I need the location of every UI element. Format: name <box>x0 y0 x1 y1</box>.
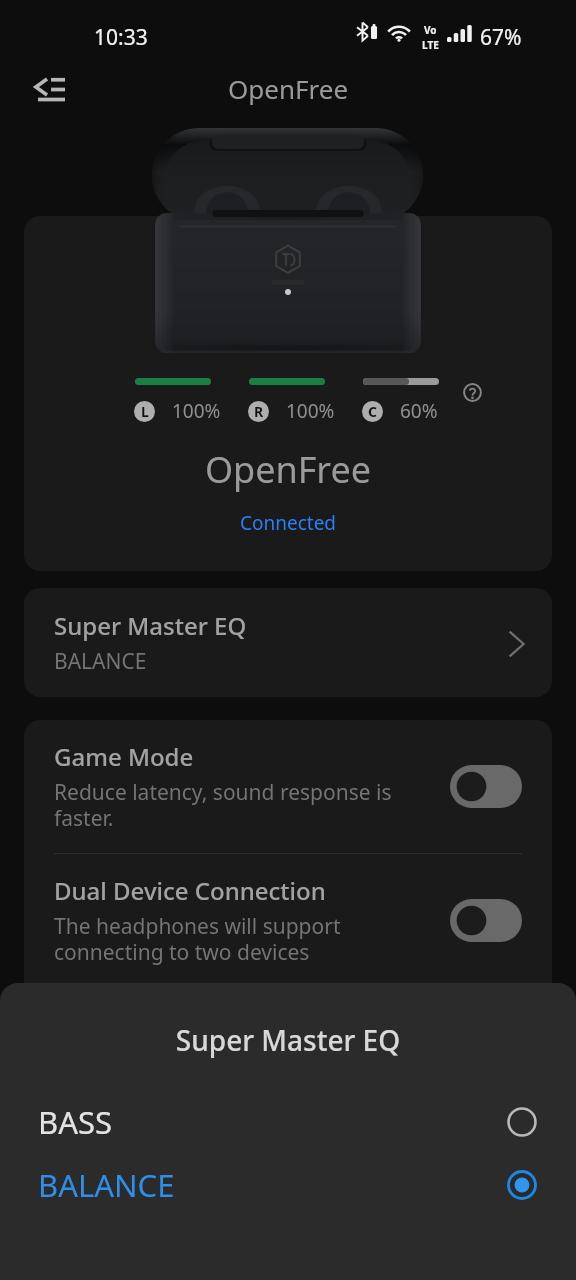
staticText: BALANCE <box>38 1164 506 1206</box>
staticText: 100% <box>172 398 221 424</box>
staticText: Dual Device Connection <box>54 874 326 907</box>
button[interactable]: Toggle <box>450 765 522 808</box>
button[interactable]: Game Mode <box>24 720 552 853</box>
staticText: BALANCE <box>54 647 147 676</box>
button[interactable]: BASS <box>0 1097 576 1147</box>
staticText: OpenFree <box>228 71 349 106</box>
button[interactable]: Dual Device Connection <box>24 854 552 987</box>
staticText: Super Master EQ <box>0 1021 576 1059</box>
button[interactable]: Toggle <box>450 899 522 942</box>
staticText: Connected <box>0 510 576 536</box>
staticText: 60% <box>400 398 438 424</box>
staticText: L <box>141 402 149 421</box>
staticText: The headphones will support connecting t… <box>54 912 341 967</box>
staticText: LTE <box>422 38 439 52</box>
staticText: Reduce latency, sound response is faster… <box>54 778 392 833</box>
button[interactable]: Super Master EQ <box>24 588 552 697</box>
staticText: C <box>368 402 377 421</box>
staticText: 100% <box>286 398 335 424</box>
staticText: 67% <box>480 23 522 52</box>
staticText: Vo <box>424 23 437 37</box>
button[interactable]: Help <box>454 374 490 410</box>
staticText: Game Mode <box>54 740 194 773</box>
staticText: R <box>254 402 264 421</box>
button[interactable]: BALANCE <box>0 1160 576 1210</box>
staticText: BASS <box>38 1101 506 1143</box>
staticText: Super Master EQ <box>54 609 247 642</box>
staticText: OpenFree <box>0 445 576 494</box>
staticText: 10:33 <box>94 23 148 52</box>
button[interactable]: Back <box>21 61 77 117</box>
